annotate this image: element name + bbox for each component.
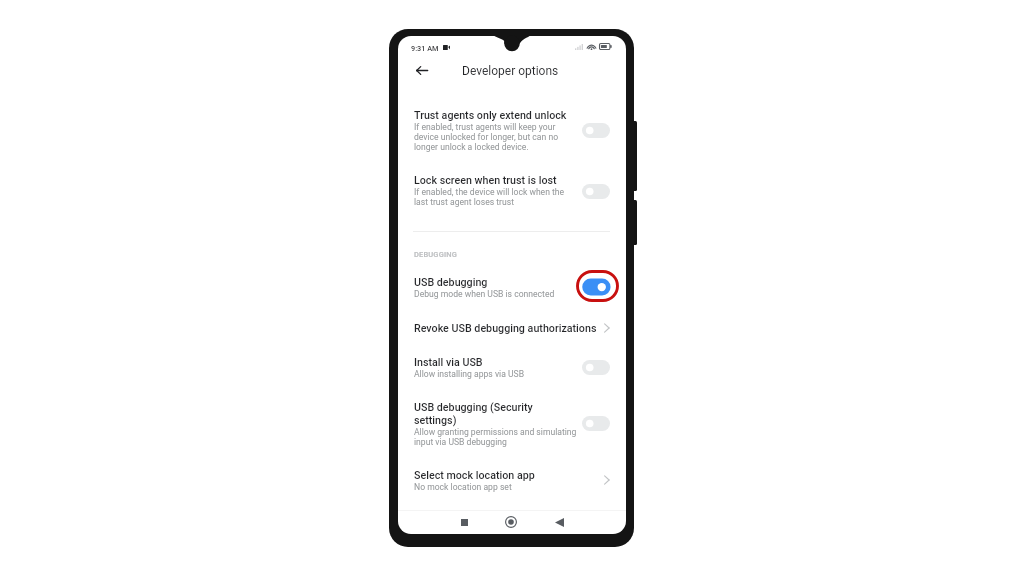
button[interactable]: Toggle off (577, 354, 615, 380)
button[interactable]: Recent apps (452, 510, 476, 534)
staticText: Select mock location app (414, 469, 535, 482)
button[interactable]: USB debugging (Security settings) (398, 398, 626, 450)
button[interactable]: Toggle on (574, 269, 620, 303)
staticText: Lock screen when trust is lost (414, 174, 557, 187)
staticText: 9:31 AM (411, 44, 439, 53)
button[interactable]: Toggle off (577, 117, 615, 143)
button[interactable]: Trust agents only extend unlock (398, 104, 626, 158)
button[interactable]: Revoke USB debugging authorizations (398, 318, 626, 346)
button[interactable]: Toggle off (577, 410, 615, 436)
staticText: Trust agents only extend unlock (414, 109, 567, 122)
staticText: DEBUGGING (414, 250, 457, 259)
button[interactable]: Home (499, 510, 523, 534)
button[interactable]: USB debugging (398, 272, 626, 308)
staticText: Debug mode when USB is connected (414, 289, 555, 299)
button[interactable]: Back (547, 510, 571, 534)
staticText: USB debugging (Security settings) (414, 401, 533, 427)
button[interactable]: Navigate up (408, 56, 436, 84)
staticText: If enabled, trust agents will keep your … (414, 122, 559, 152)
button[interactable]: Toggle off (577, 178, 615, 204)
staticText: Install via USB (414, 356, 483, 369)
staticText: Revoke USB debugging authorizations (414, 322, 597, 335)
staticText: No mock location app set (414, 482, 512, 492)
staticText: If enabled, the device will lock when th… (414, 187, 565, 207)
button[interactable]: Install via USB (398, 354, 626, 388)
staticText: USB debugging (414, 276, 488, 289)
button[interactable]: Lock screen when trust is lost (398, 172, 626, 216)
staticText: Developer options (462, 64, 559, 78)
staticText: Allow granting permissions and simulatin… (414, 427, 577, 447)
button[interactable]: Select mock location app (398, 466, 626, 500)
staticText: Allow installing apps via USB (414, 369, 524, 379)
